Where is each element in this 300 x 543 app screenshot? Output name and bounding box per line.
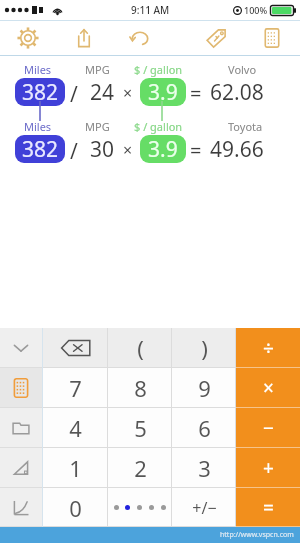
button[interactable]: 30 bbox=[85, 135, 119, 163]
staticText: 24 bbox=[90, 78, 115, 106]
button[interactable]: 0 bbox=[43, 488, 108, 527]
button[interactable]: Page 4 bbox=[149, 505, 154, 510]
button[interactable]: Calculator bbox=[0, 368, 42, 408]
button[interactable]: Files bbox=[0, 408, 42, 448]
button[interactable]: Page 5 bbox=[161, 505, 166, 510]
staticText: 0 bbox=[69, 493, 82, 523]
staticText: × bbox=[123, 82, 133, 104]
button[interactable]: × bbox=[236, 368, 300, 408]
button[interactable]: 5 bbox=[108, 408, 172, 448]
button[interactable]: Backspace bbox=[43, 328, 108, 368]
button[interactable]: ÷ bbox=[236, 328, 300, 368]
staticText: 49.66 bbox=[210, 135, 264, 163]
staticText: 1 bbox=[69, 453, 82, 483]
button[interactable]: Geometry bbox=[0, 448, 42, 488]
staticText: Miles bbox=[24, 62, 52, 77]
staticText: 9:11 AM bbox=[131, 3, 170, 17]
staticText: $ / gallon bbox=[134, 119, 183, 134]
button[interactable]: 8 bbox=[108, 368, 172, 408]
staticText: × bbox=[263, 375, 274, 401]
staticText: / bbox=[70, 80, 78, 109]
button[interactable]: Page 1 bbox=[114, 505, 119, 510]
staticText: 4 bbox=[69, 413, 82, 443]
staticText: MPG bbox=[85, 62, 110, 77]
staticText: 3 bbox=[198, 453, 211, 483]
button[interactable]: 4 bbox=[43, 408, 108, 448]
staticText: ÷ bbox=[263, 335, 274, 361]
button[interactable]: Tags bbox=[188, 20, 244, 55]
button[interactable]: 3.9 bbox=[140, 135, 186, 163]
button[interactable]: +/− bbox=[172, 488, 236, 527]
button[interactable]: Graph bbox=[0, 488, 42, 527]
staticText: 100% bbox=[244, 4, 268, 16]
staticText: − bbox=[263, 415, 274, 441]
staticText: 62.08 bbox=[210, 78, 264, 106]
button[interactable]: Undo bbox=[112, 20, 168, 55]
staticText: Volvo bbox=[228, 62, 257, 77]
staticText: ( bbox=[137, 333, 144, 363]
button[interactable]: 24 bbox=[85, 78, 119, 106]
staticText: 382 bbox=[22, 135, 59, 163]
button[interactable]: Collapse bbox=[0, 328, 42, 368]
staticText: × bbox=[123, 139, 133, 161]
staticText: Toyota bbox=[228, 119, 263, 134]
button[interactable]: 3.9 bbox=[140, 78, 186, 106]
staticText: 3.9 bbox=[148, 135, 178, 163]
staticText: $ / gallon bbox=[134, 62, 183, 77]
button[interactable]: 3 bbox=[172, 448, 236, 488]
staticText: 3.9 bbox=[148, 78, 178, 106]
button[interactable]: Keypad bbox=[244, 20, 300, 55]
button[interactable]: 7 bbox=[43, 368, 108, 408]
button[interactable]: Page 2 bbox=[125, 505, 130, 510]
button[interactable]: − bbox=[236, 408, 300, 448]
button[interactable]: Settings bbox=[0, 20, 56, 55]
button[interactable]: Share bbox=[56, 20, 112, 55]
button[interactable]: 2 bbox=[108, 448, 172, 488]
button[interactable]: ( bbox=[108, 328, 172, 368]
staticText: http://www.vspcn.com bbox=[220, 530, 294, 540]
button[interactable]: = bbox=[236, 488, 300, 527]
staticText: = bbox=[190, 137, 202, 164]
staticText: 6 bbox=[198, 413, 211, 443]
button[interactable]: 49.66 bbox=[210, 135, 280, 163]
button[interactable]: Page 3 bbox=[137, 505, 142, 510]
staticText: ) bbox=[201, 333, 208, 363]
button[interactable]: ) bbox=[172, 328, 236, 368]
staticText: 7 bbox=[69, 373, 82, 403]
staticText: 30 bbox=[90, 135, 115, 163]
button[interactable]: + bbox=[236, 448, 300, 488]
button[interactable]: 6 bbox=[172, 408, 236, 448]
staticText: = bbox=[190, 80, 202, 107]
staticText: = bbox=[263, 495, 274, 521]
staticText: 2 bbox=[134, 453, 147, 483]
button[interactable]: 382 bbox=[15, 78, 65, 106]
button[interactable]: 62.08 bbox=[210, 78, 280, 106]
staticText: Miles bbox=[24, 119, 52, 134]
staticText: 8 bbox=[134, 373, 147, 403]
button[interactable]: 1 bbox=[43, 448, 108, 488]
staticText: +/− bbox=[192, 497, 217, 519]
staticText: 5 bbox=[134, 413, 147, 443]
button[interactable]: 382 bbox=[15, 135, 65, 163]
staticText: / bbox=[70, 137, 78, 166]
staticText: 382 bbox=[22, 78, 59, 106]
staticText: MPG bbox=[85, 119, 110, 134]
staticText: 9 bbox=[198, 373, 211, 403]
staticText: + bbox=[263, 455, 274, 481]
button[interactable]: Page 1 bbox=[108, 488, 172, 527]
button[interactable]: 9 bbox=[172, 368, 236, 408]
